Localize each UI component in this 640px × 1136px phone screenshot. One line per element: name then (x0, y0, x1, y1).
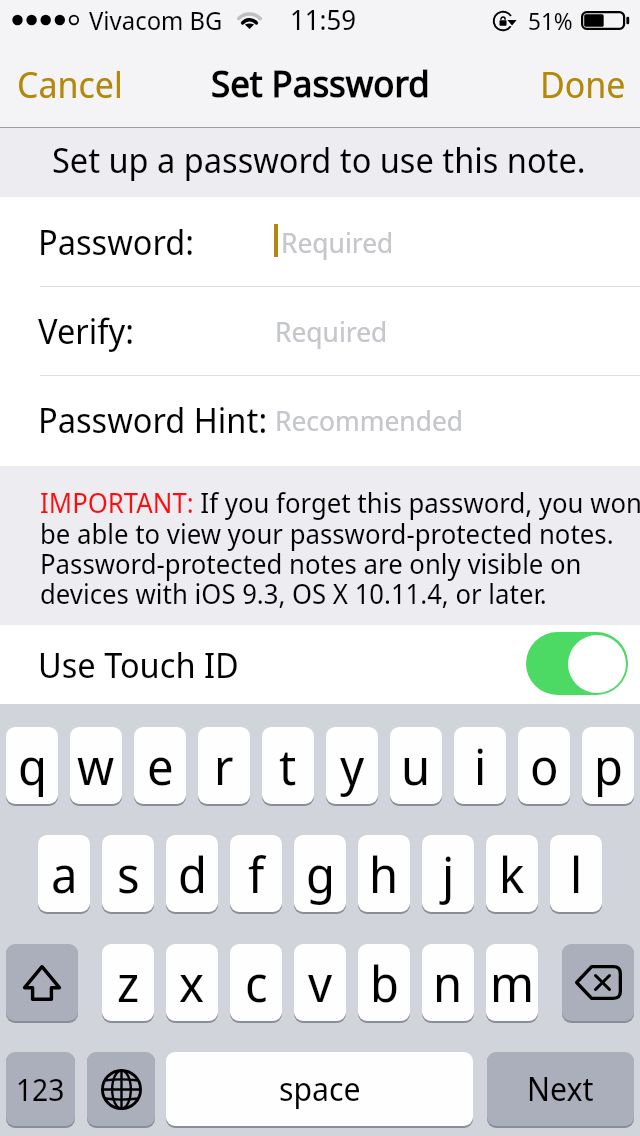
button[interactable]: k (486, 835, 538, 912)
staticText: n (433, 949, 463, 1017)
staticText: d (178, 840, 207, 908)
staticText: Required (281, 223, 394, 261)
button[interactable]: w (70, 727, 122, 804)
button[interactable]: l (550, 835, 602, 912)
button[interactable]: x (166, 944, 218, 1021)
staticText: Next (527, 1067, 594, 1111)
staticText: w (77, 732, 115, 800)
button[interactable]: j (422, 835, 474, 912)
staticText: l (570, 840, 583, 908)
button[interactable]: b (358, 944, 410, 1021)
staticText: 11:59 (290, 1, 357, 38)
staticText: 123 (16, 1069, 65, 1110)
staticText: Set up a password to use this note. (52, 136, 586, 183)
button[interactable]: t (262, 727, 314, 804)
staticText: x (179, 949, 205, 1017)
staticText: q (18, 732, 47, 800)
staticText: b (370, 949, 399, 1017)
staticText: Required (275, 312, 388, 350)
staticText: Use Touch ID (38, 641, 239, 688)
button[interactable]: p (582, 727, 634, 804)
button[interactable]: v (294, 944, 346, 1021)
button[interactable]: h (358, 835, 410, 912)
button[interactable]: Shift (6, 944, 78, 1021)
staticText: s (117, 840, 140, 908)
button[interactable]: 123 (6, 1052, 75, 1126)
button[interactable]: Cancel (0, 42, 140, 127)
button[interactable]: n (422, 944, 474, 1021)
button[interactable]: space (166, 1052, 473, 1126)
staticText: t (279, 732, 297, 800)
staticText: z (117, 949, 140, 1017)
staticText: u (401, 732, 431, 800)
staticText: Set Password (211, 57, 430, 107)
button[interactable]: i (454, 727, 506, 804)
staticText: j (442, 840, 455, 908)
button[interactable]: g (294, 835, 346, 912)
button[interactable]: c (230, 944, 282, 1021)
staticText: o (530, 732, 559, 800)
staticText: g (306, 840, 335, 908)
button[interactable]: d (166, 835, 218, 912)
button[interactable]: y (326, 727, 378, 804)
staticText: h (369, 840, 399, 908)
staticText: c (245, 949, 268, 1017)
staticText: f (248, 840, 265, 908)
staticText: p (594, 732, 623, 800)
button[interactable]: Backspace (562, 944, 634, 1021)
staticText: Recommended (275, 401, 463, 439)
button[interactable]: Next (487, 1052, 634, 1126)
staticText: m (490, 949, 535, 1017)
staticText: v (308, 949, 333, 1017)
staticText: Cancel (17, 60, 123, 109)
staticText: IMPORTANT: If you forget this password, … (40, 484, 640, 612)
staticText: space (279, 1067, 361, 1111)
button[interactable]: q (6, 727, 58, 804)
staticText: k (499, 840, 525, 908)
staticText: Done (540, 60, 626, 109)
button[interactable]: Verify: (0, 286, 640, 375)
button[interactable]: o (518, 727, 570, 804)
staticText: e (147, 732, 174, 800)
staticText: 51% (528, 4, 573, 37)
button[interactable]: a (38, 835, 90, 912)
staticText: Password Hint: (38, 396, 268, 443)
button[interactable]: Password: (0, 197, 640, 286)
staticText: a (51, 840, 78, 908)
button[interactable]: f (230, 835, 282, 912)
staticText: Verify: (38, 307, 134, 354)
button[interactable]: Use Touch ID (0, 625, 640, 704)
staticText: i (474, 732, 487, 800)
button[interactable]: s (102, 835, 154, 912)
button[interactable]: Password Hint: (0, 375, 640, 464)
staticText: Password: (38, 218, 195, 265)
button[interactable]: Switch keyboard (87, 1052, 155, 1126)
button[interactable]: z (102, 944, 154, 1021)
button[interactable]: u (390, 727, 442, 804)
button[interactable]: m (486, 944, 538, 1021)
staticText: r (214, 732, 234, 800)
staticText: Vivacom BG (89, 3, 223, 37)
staticText: y (340, 732, 365, 800)
button[interactable]: e (134, 727, 186, 804)
button[interactable]: Done (526, 42, 640, 127)
button[interactable]: r (198, 727, 250, 804)
